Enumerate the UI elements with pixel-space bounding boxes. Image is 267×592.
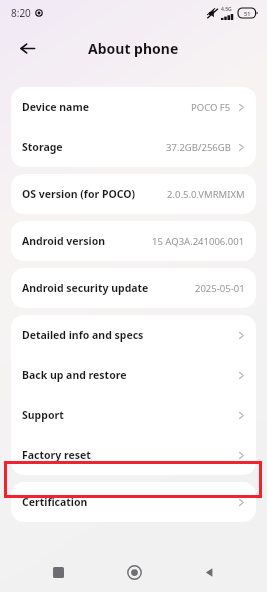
staticText: 15 AQ3A.241006.001 (152, 235, 245, 248)
button[interactable]: Storage (11, 127, 256, 167)
staticText: 2.0.5.0.VMRMIXM (167, 188, 245, 201)
staticText: Support (22, 408, 64, 422)
staticText: Device name (22, 100, 89, 114)
button[interactable]: OS version (for POCO) (11, 174, 256, 214)
staticText: Factory reset (22, 448, 91, 462)
button[interactable]: Support (11, 395, 256, 435)
staticText: About phone (88, 39, 179, 58)
staticText: Android security update (22, 281, 149, 295)
button[interactable]: Recent apps (41, 555, 75, 589)
staticText: 8:20 (11, 6, 31, 20)
staticText: Certification (22, 495, 88, 509)
button[interactable]: Device name (11, 87, 256, 127)
staticText: POCO F5 (191, 101, 231, 114)
staticText: 2025-05-01 (195, 282, 245, 295)
staticText: 51 (244, 10, 251, 17)
button[interactable]: Factory reset (11, 435, 256, 475)
staticText: 4.5G (221, 6, 232, 13)
staticText: OS version (for POCO) (22, 187, 136, 201)
staticText: Storage (22, 140, 63, 154)
button[interactable]: Android version (11, 221, 256, 261)
button[interactable]: Android security update (11, 268, 256, 308)
button[interactable]: Back (192, 555, 226, 589)
staticText: Detailed info and specs (22, 328, 144, 342)
button[interactable]: Back up and restore (11, 355, 256, 395)
button[interactable]: Home (117, 555, 151, 589)
staticText: Android version (22, 234, 106, 248)
staticText: 37.2GB/256GB (166, 141, 231, 154)
button[interactable]: Certification (11, 482, 256, 522)
button[interactable]: Detailed info and specs (11, 315, 256, 355)
button[interactable]: Back (11, 32, 43, 64)
staticText: Back up and restore (22, 368, 127, 382)
